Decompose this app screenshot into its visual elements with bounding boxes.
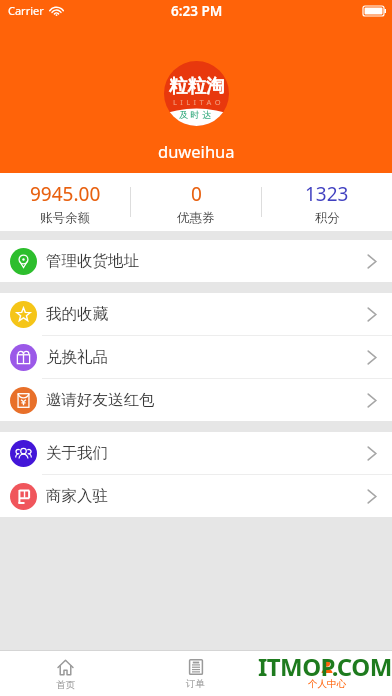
- staticText: 我的收藏: [46, 304, 108, 324]
- staticText: 关于我们: [46, 443, 108, 463]
- staticText: ITMOP.COM: [258, 650, 392, 683]
- button[interactable]: 订单: [130, 651, 261, 696]
- staticText: 0: [191, 181, 202, 207]
- staticText: 1323: [305, 181, 349, 207]
- staticText: 订单: [186, 678, 205, 690]
- button[interactable]: 1323: [262, 178, 392, 226]
- staticText: Carrier: [8, 3, 44, 18]
- staticText: 兑换礼品: [46, 347, 108, 367]
- staticText: 首页: [56, 679, 75, 691]
- staticText: 邀请好友送红包: [46, 390, 155, 410]
- button[interactable]: 个人中心: [261, 651, 392, 696]
- button[interactable]: 我的收藏: [0, 293, 392, 335]
- button[interactable]: 9945.00: [0, 178, 130, 226]
- staticText: 积分: [315, 210, 340, 226]
- button[interactable]: 关于我们: [0, 432, 392, 474]
- staticText: 6:23 PM: [171, 2, 223, 20]
- staticText: 账号余额: [40, 210, 90, 226]
- staticText: 粒粒淘: [169, 74, 225, 97]
- staticText: 优惠券: [177, 210, 215, 226]
- button[interactable]: 兑换礼品: [0, 336, 392, 378]
- button[interactable]: 首页: [0, 651, 130, 696]
- staticText: LILITAO: [173, 97, 224, 107]
- staticText: 商家入驻: [46, 486, 108, 506]
- staticText: duweihua: [158, 140, 235, 162]
- button[interactable]: 邀请好友送红包: [0, 379, 392, 421]
- staticText: 管理收货地址: [46, 251, 139, 271]
- staticText: 及时达: [179, 109, 214, 120]
- button[interactable]: 管理收货地址: [0, 240, 392, 282]
- staticText: 个人中心: [308, 678, 346, 690]
- button[interactable]: 0: [131, 178, 261, 226]
- staticText: 9945.00: [30, 181, 101, 207]
- button[interactable]: 商家入驻: [0, 475, 392, 517]
